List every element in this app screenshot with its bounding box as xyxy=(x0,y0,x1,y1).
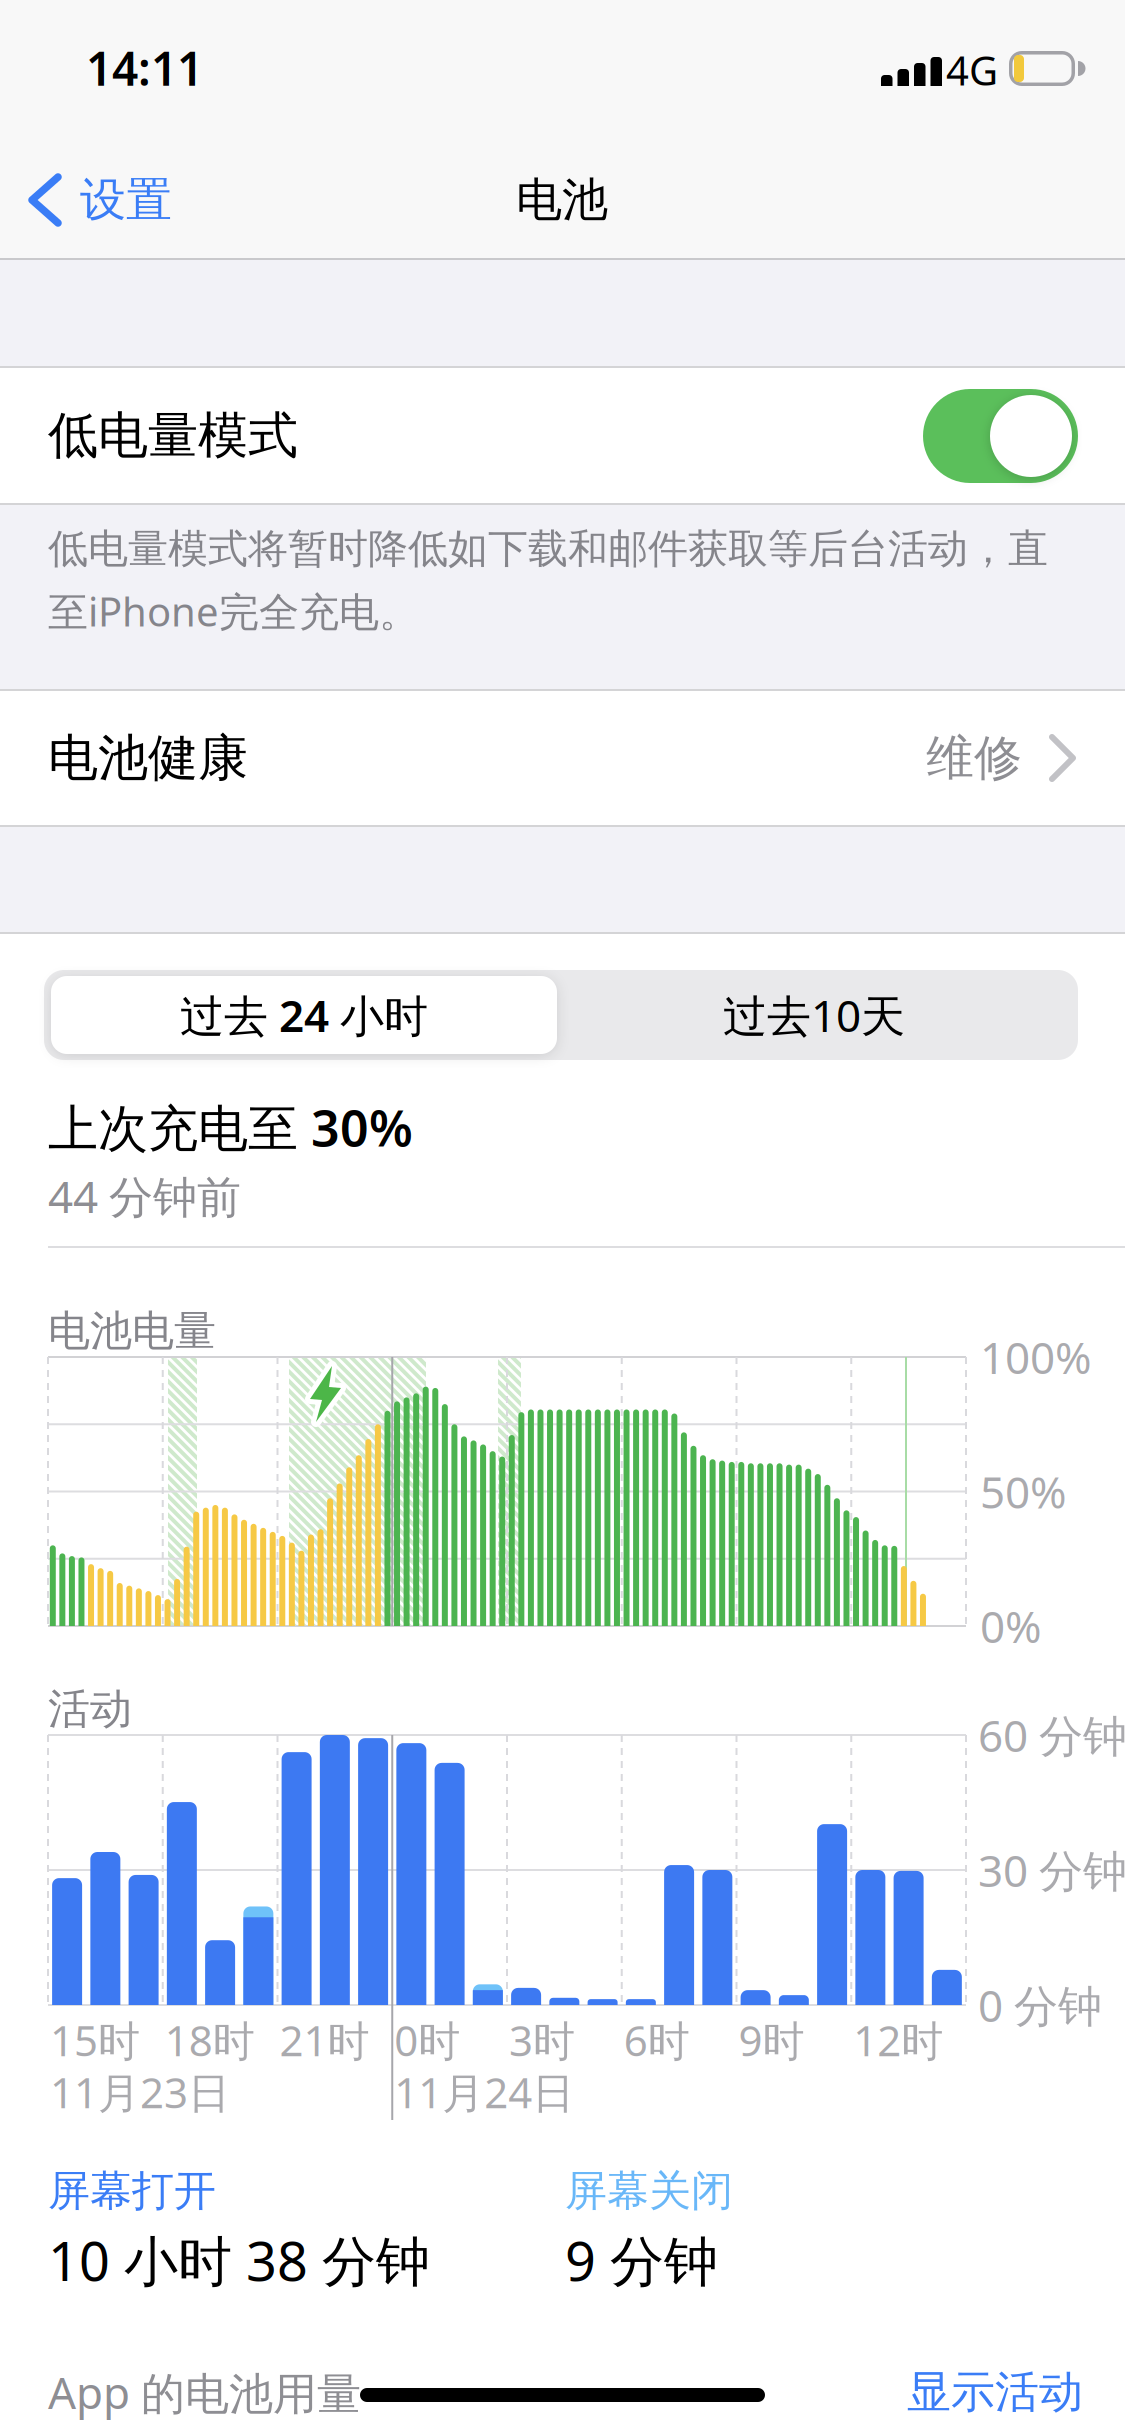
staticText: 至iPhone完全充电。 xyxy=(48,584,419,638)
button[interactable]: 过去 24 小时 xyxy=(51,976,557,1054)
button[interactable]: 显示活动 xyxy=(783,2366,1083,2418)
staticText: 设置 xyxy=(80,171,172,229)
staticText: 上次充电至 30% xyxy=(48,1093,413,1161)
staticText: 0 分钟 xyxy=(978,1975,1102,2035)
staticText: 3时 xyxy=(509,2011,575,2069)
staticText: 过去10天 xyxy=(723,985,905,1045)
staticText: 30 分钟 xyxy=(978,1840,1125,1900)
button[interactable]: 返回设置 xyxy=(24,175,224,225)
staticText: 12时 xyxy=(853,2011,943,2069)
staticText: 15时 xyxy=(50,2011,140,2069)
staticText: 电池 xyxy=(516,171,608,229)
staticText: 100% xyxy=(980,1327,1092,1387)
staticText: 活动 xyxy=(48,1682,132,1735)
staticText: 过去 24 小时 xyxy=(180,985,428,1045)
staticText: 屏幕打开 xyxy=(48,2164,216,2217)
button[interactable]: 电池健康 xyxy=(0,691,1125,825)
staticText: 电池健康 xyxy=(48,726,248,789)
staticText: 0% xyxy=(980,1596,1042,1656)
staticText: 50% xyxy=(980,1461,1067,1521)
button[interactable]: 过去10天 xyxy=(564,970,1064,1060)
staticText: 18时 xyxy=(165,2011,255,2069)
staticText: 6时 xyxy=(624,2011,690,2069)
staticText: 10 小时 38 分钟 xyxy=(48,2223,430,2297)
staticText: 9 分钟 xyxy=(565,2223,718,2297)
staticText: 11月24日 xyxy=(394,2063,574,2121)
staticText: 11月23日 xyxy=(50,2063,230,2121)
staticText: 21时 xyxy=(279,2011,369,2069)
staticText: 屏幕关闭 xyxy=(565,2164,733,2217)
staticText: 14:11 xyxy=(86,37,203,99)
staticText: 0时 xyxy=(394,2011,460,2069)
staticText: 显示活动 xyxy=(907,2364,1083,2420)
staticText: 60 分钟 xyxy=(978,1705,1125,1765)
staticText: 4G xyxy=(946,43,998,97)
staticText: App 的电池用量 xyxy=(48,2362,361,2422)
staticText: 低电量模式将暂时降低如下载和邮件获取等后台活动，直 xyxy=(48,524,1048,574)
staticText: 9时 xyxy=(738,2011,804,2069)
staticText: 低电量模式 xyxy=(48,404,298,467)
staticText: 44 分钟前 xyxy=(48,1166,241,1226)
staticText: 维修 xyxy=(926,728,1022,788)
staticText: 电池电量 xyxy=(48,1304,216,1357)
button[interactable]: 低电量模式 xyxy=(0,368,1125,503)
